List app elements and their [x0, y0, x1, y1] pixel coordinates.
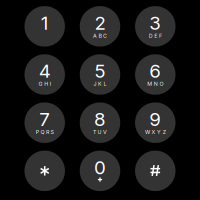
- staticText: JKL: [93, 81, 107, 87]
- staticText: 1: [41, 12, 49, 34]
- staticText: 9: [149, 108, 161, 130]
- staticText: DEF: [149, 32, 162, 39]
- staticText: 7: [39, 108, 50, 130]
- button[interactable]: 2 A B C: [80, 6, 120, 47]
- staticText: ABC: [93, 32, 107, 39]
- staticText: WXYZ: [145, 129, 166, 135]
- staticText: PQRS: [36, 129, 54, 135]
- staticText: 4: [39, 60, 51, 82]
- button[interactable]: 9 W X Y Z: [135, 102, 175, 143]
- staticText: 8: [94, 108, 106, 130]
- button[interactable]: 0 +: [80, 151, 120, 191]
- staticText: MNO: [147, 81, 163, 87]
- button[interactable]: 6 M N O: [135, 54, 175, 95]
- staticText: 2: [94, 12, 105, 34]
- staticText: TUV: [93, 129, 107, 135]
- button[interactable]: 4 G H I: [24, 54, 65, 95]
- button[interactable]: 3 D E F: [135, 6, 175, 47]
- staticText: 6: [149, 60, 161, 82]
- button[interactable]: 1: [24, 6, 65, 47]
- staticText: 5: [94, 60, 105, 82]
- button[interactable]: 8 T U V: [80, 102, 120, 143]
- button[interactable]: 7 P Q R S: [24, 102, 65, 143]
- button[interactable]: 5 J K L: [80, 54, 120, 95]
- staticText: 3: [149, 12, 161, 34]
- button[interactable]: Star: [24, 151, 65, 191]
- button[interactable]: Pound: [135, 151, 175, 191]
- staticText: 0: [94, 156, 106, 179]
- staticText: GHI: [39, 81, 51, 87]
